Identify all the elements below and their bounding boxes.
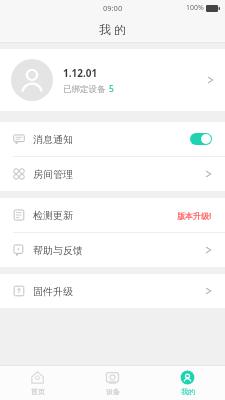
button[interactable]: 消息通知开关 xyxy=(190,133,212,145)
staticText: 帮助与反馈 xyxy=(33,244,83,257)
staticText: 首页 xyxy=(31,387,45,396)
staticText: 100% xyxy=(186,3,204,13)
staticText: 我 的 xyxy=(99,21,127,37)
button[interactable]: 设备 xyxy=(75,366,150,400)
staticText: 设备 xyxy=(106,387,120,396)
staticText: 版本升级! xyxy=(177,210,212,221)
staticText: 固件升级 xyxy=(33,285,73,298)
staticText: 已绑定设备 xyxy=(63,84,106,95)
staticText: 消息通知 xyxy=(33,133,73,146)
button[interactable]: 帮助与反馈 xyxy=(0,233,225,267)
staticText: 1.12.01 xyxy=(63,66,98,80)
staticText: 我的 xyxy=(181,387,195,396)
staticText: 5 xyxy=(109,83,114,95)
button[interactable]: 房间管理 xyxy=(0,157,225,191)
staticText: 检测更新 xyxy=(33,209,73,222)
button[interactable]: 检测更新 xyxy=(0,198,225,232)
staticText: 房间管理 xyxy=(33,168,73,181)
button[interactable]: 固件升级 xyxy=(0,274,225,308)
button[interactable]: 1.12.01 xyxy=(0,49,225,111)
button[interactable]: 我的 xyxy=(150,366,225,400)
button[interactable]: 首页 xyxy=(0,366,75,400)
staticText: 09:00 xyxy=(103,3,123,13)
button[interactable]: 消息通知 xyxy=(0,122,225,156)
